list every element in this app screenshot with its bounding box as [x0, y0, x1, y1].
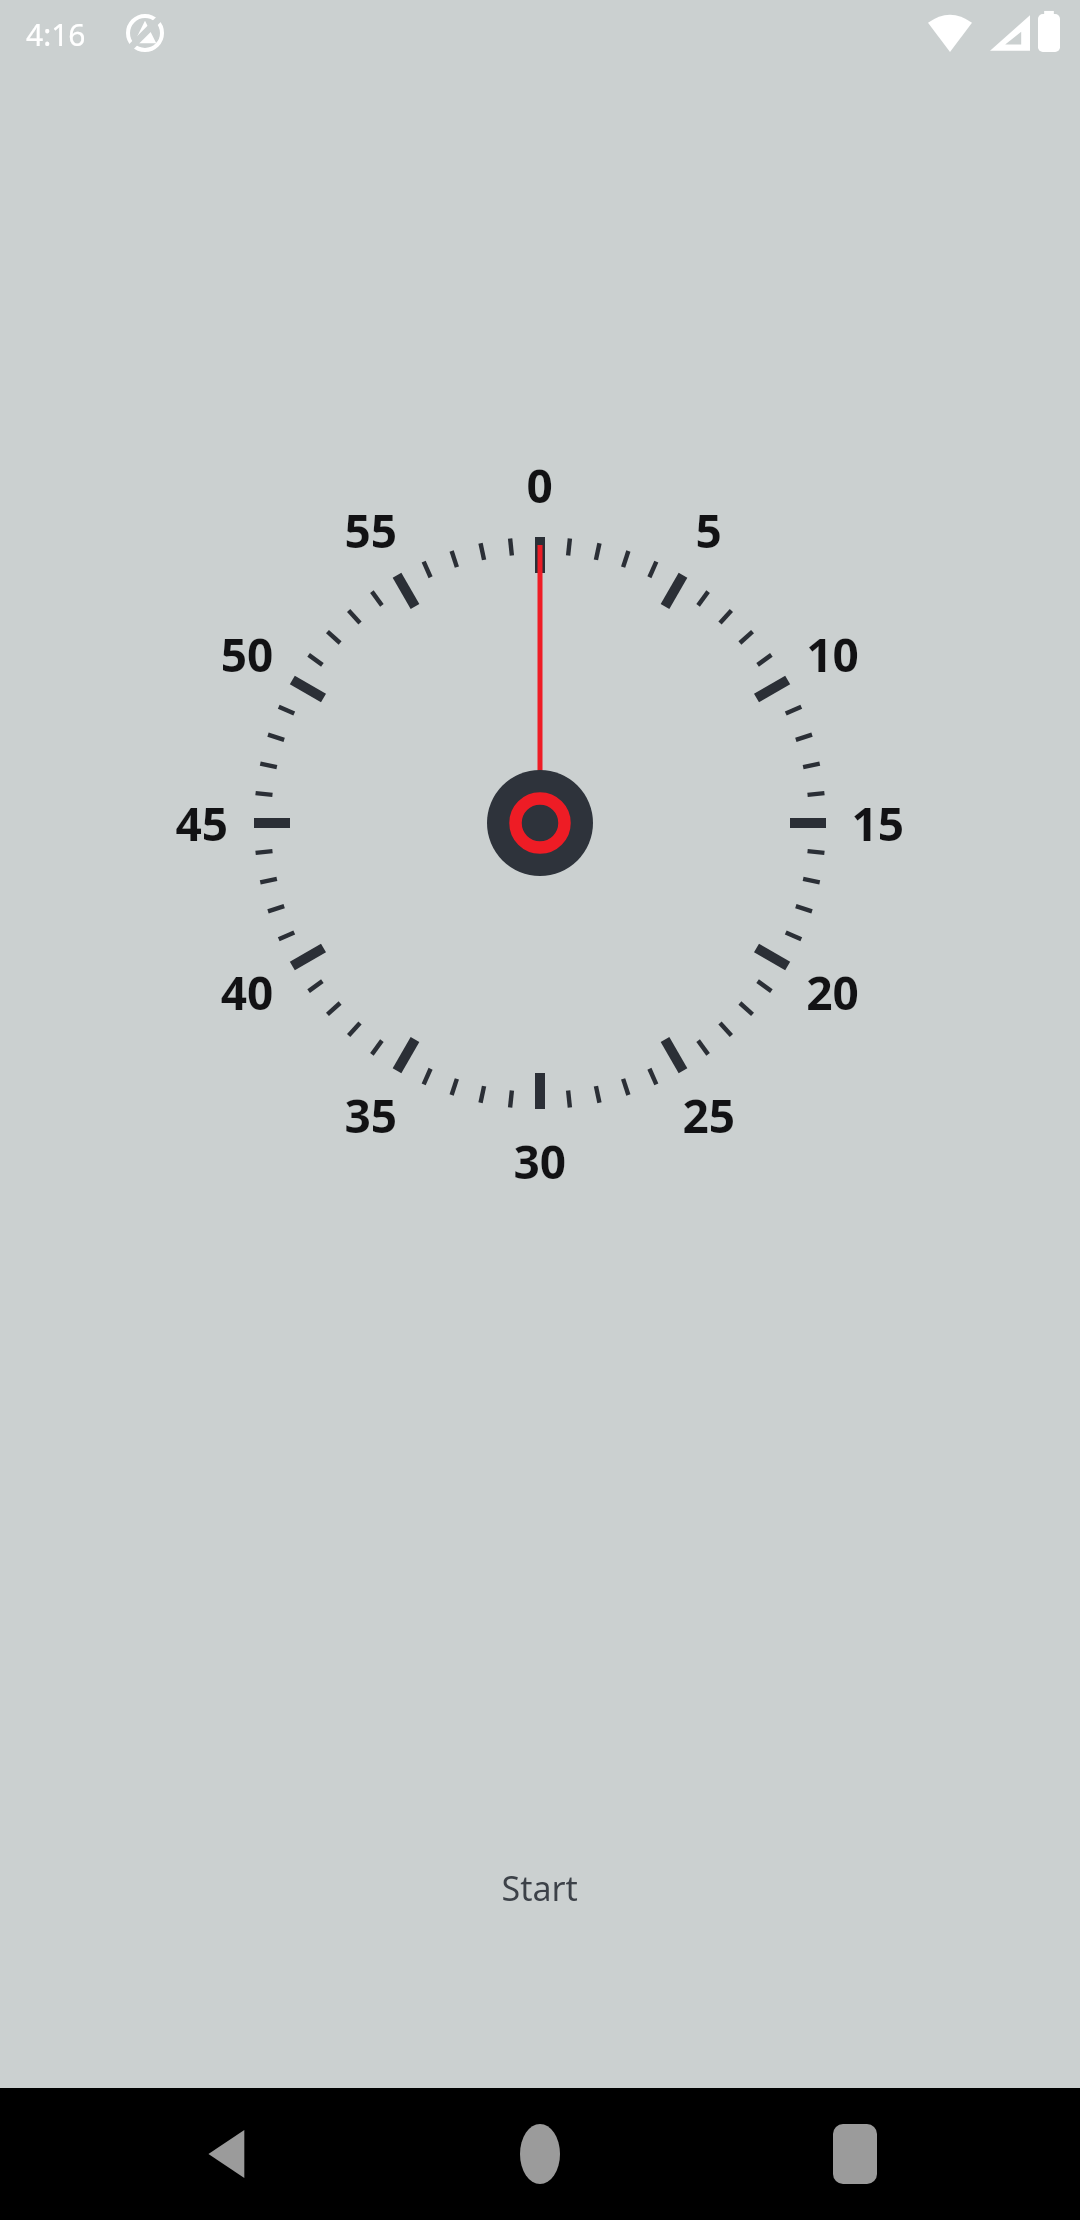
button[interactable]: Home — [360, 2088, 720, 2220]
button[interactable]: Back — [0, 2088, 360, 2220]
button[interactable] — [412, 1842, 668, 1936]
button[interactable]: Stopwatch dial — [190, 473, 890, 1173]
button[interactable]: Recent apps — [720, 2088, 1080, 2220]
